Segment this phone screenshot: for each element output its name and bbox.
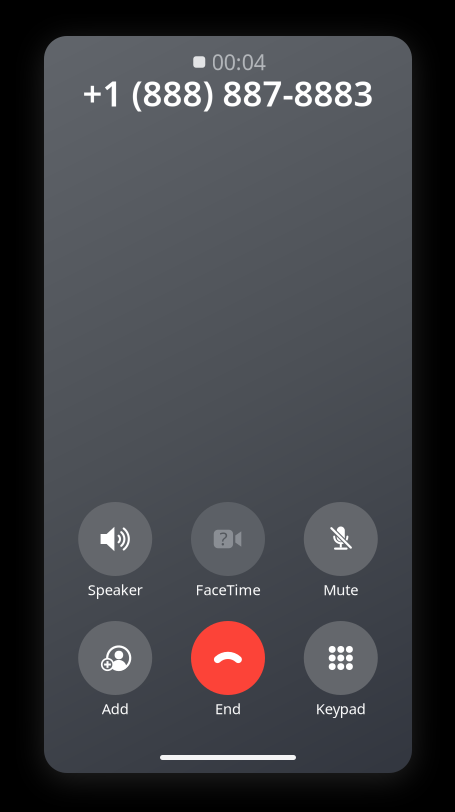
button[interactable]: Add: [63, 621, 167, 723]
staticText: ?: [219, 526, 227, 551]
staticText: End: [215, 699, 241, 718]
staticText: Speaker: [88, 580, 143, 599]
staticText: 00:04: [212, 48, 266, 76]
button[interactable]: ?: [176, 502, 280, 604]
button[interactable]: Mute: [289, 502, 393, 604]
staticText: +1 (888) 887-8883: [82, 70, 373, 116]
button[interactable]: Keypad: [289, 621, 393, 723]
button[interactable]: End: [176, 621, 280, 723]
button[interactable]: Speaker: [63, 502, 167, 604]
staticText: Keypad: [316, 699, 366, 718]
staticText: Add: [102, 699, 129, 718]
staticText: FaceTime: [195, 580, 260, 599]
staticText: Mute: [323, 580, 358, 599]
